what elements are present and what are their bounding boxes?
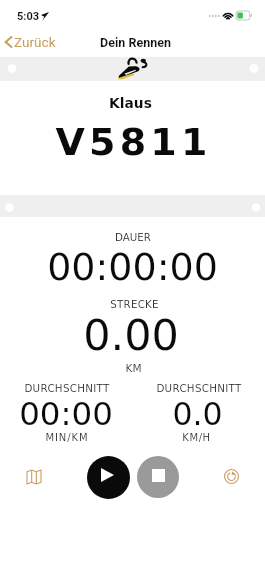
staticText: 0.0 — [172, 396, 223, 433]
staticText: Zurück — [14, 34, 56, 50]
button[interactable]: Karte — [13, 456, 54, 497]
staticText: KM/H — [182, 432, 211, 444]
staticText: 00:00 — [19, 395, 113, 433]
staticText: MIN/KM — [45, 432, 89, 444]
staticText: Dein Rennen — [100, 35, 171, 50]
button[interactable]: Stopp — [137, 456, 179, 498]
staticText: STRECKE — [110, 298, 159, 310]
staticText: DURCHSCHNITT — [156, 382, 242, 394]
staticText: 0.00 — [83, 310, 179, 360]
staticText: KM — [125, 362, 142, 374]
staticText: 00:00:00 — [47, 245, 218, 289]
staticText: Klaus — [109, 95, 152, 111]
button[interactable]: Zurück — [1, 32, 66, 52]
button[interactable]: Start — [87, 456, 130, 499]
staticText: DAUER — [115, 231, 151, 243]
staticText: V5811 — [55, 120, 212, 164]
staticText: DURCHSCHNITT — [24, 382, 110, 394]
staticText: 5:03 — [17, 10, 40, 23]
button[interactable]: Zurücksetzen — [211, 456, 252, 497]
